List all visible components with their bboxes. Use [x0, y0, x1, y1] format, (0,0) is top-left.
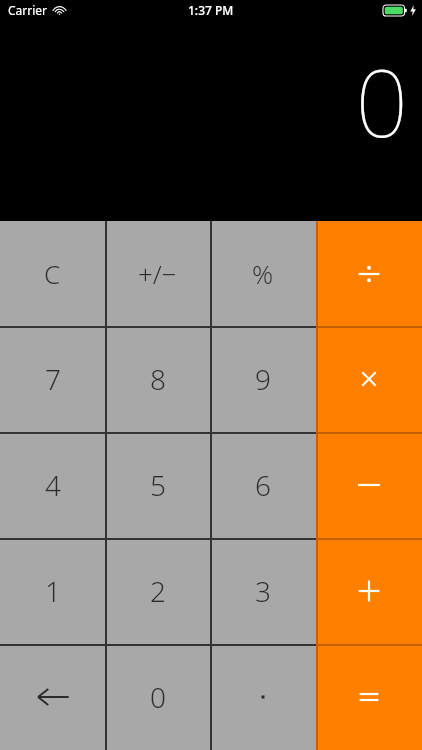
button[interactable]: Equals [316, 644, 422, 750]
staticText: 3 [255, 572, 271, 610]
staticText: +/− [138, 256, 177, 291]
button[interactable]: Percent [210, 221, 316, 326]
button[interactable]: 8 [105, 326, 210, 432]
button[interactable]: 1 [0, 538, 105, 644]
button[interactable]: Multiply [316, 326, 422, 432]
staticText: 6 [255, 466, 271, 504]
button[interactable]: 3 [210, 538, 316, 644]
button[interactable]: Plus [316, 538, 422, 644]
button[interactable]: Minus [316, 432, 422, 538]
staticText: 0 [150, 678, 166, 716]
button[interactable]: Decimal point [210, 644, 316, 750]
button[interactable]: 2 [105, 538, 210, 644]
button[interactable]: Clear [0, 221, 105, 326]
button[interactable]: 9 [210, 326, 316, 432]
button[interactable]: Toggle sign [105, 221, 210, 326]
staticText: 1 [45, 572, 61, 610]
staticText: 5 [150, 466, 166, 504]
staticText: 2 [150, 572, 166, 610]
button[interactable]: Backspace [0, 644, 105, 750]
staticText: 1:37 PM [188, 2, 234, 18]
staticText: % [252, 256, 274, 291]
staticText: 7 [45, 360, 61, 398]
button[interactable]: Divide [316, 221, 422, 326]
button[interactable]: 5 [105, 432, 210, 538]
button[interactable]: 7 [0, 326, 105, 432]
staticText: 9 [255, 360, 271, 398]
staticText: 8 [150, 360, 166, 398]
button[interactable]: 0 [105, 644, 210, 750]
staticText: 4 [45, 466, 61, 504]
staticText: C [44, 256, 61, 291]
staticText: Carrier [8, 2, 48, 18]
button[interactable]: 6 [210, 432, 316, 538]
staticText: 0 [355, 39, 408, 164]
button[interactable]: 4 [0, 432, 105, 538]
